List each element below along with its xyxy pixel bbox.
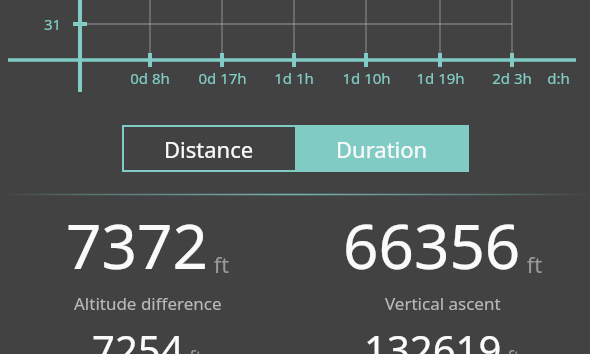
button[interactable]: Duration: [295, 125, 469, 172]
staticText: ft: [208, 249, 230, 279]
staticText: ft: [521, 249, 543, 279]
staticText: 66356: [343, 203, 521, 287]
staticText: d:h: [547, 68, 570, 88]
staticText: Altitude difference: [74, 292, 222, 315]
staticText: 7372: [66, 203, 208, 287]
staticText: 1d 10h: [342, 68, 391, 88]
staticText: Distance: [164, 134, 254, 164]
staticText: 0d 8h: [130, 68, 170, 88]
staticText: 7254: [92, 322, 184, 354]
staticText: 2d 3h: [492, 68, 532, 88]
staticText: 1d 1h: [274, 68, 314, 88]
staticText: Vertical ascent: [385, 292, 501, 315]
staticText: 1d 19h: [416, 68, 465, 88]
staticText: ft: [184, 345, 203, 354]
staticText: ft: [502, 345, 521, 354]
staticText: 0d 17h: [198, 68, 247, 88]
button[interactable]: Distance: [122, 125, 295, 172]
staticText: 132619: [364, 322, 502, 354]
staticText: 31: [44, 14, 62, 34]
staticText: Duration: [336, 134, 428, 164]
